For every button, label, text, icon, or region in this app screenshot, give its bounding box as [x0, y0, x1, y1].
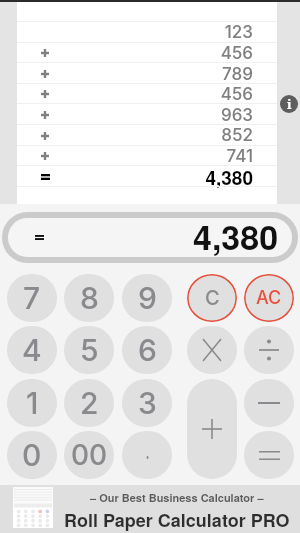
button[interactable]: All clear — [244, 274, 294, 322]
button[interactable]: 3 — [122, 379, 172, 427]
staticText: 00 — [71, 438, 108, 472]
staticText: – Our Best Business Calculator – — [90, 490, 264, 506]
button[interactable]: Decimal point — [122, 431, 172, 479]
staticText: 123 — [224, 22, 253, 43]
button[interactable]: 9 — [122, 274, 172, 322]
staticText: 1 — [26, 385, 39, 421]
button[interactable]: Plus — [187, 379, 237, 479]
staticText: 3 — [138, 385, 157, 421]
staticText: i — [287, 95, 292, 113]
button[interactable]: 2 — [64, 379, 114, 427]
button[interactable]: Equals — [244, 431, 294, 479]
button[interactable]: Minus — [244, 379, 294, 427]
button[interactable]: 4 — [7, 326, 57, 374]
staticText: 456 — [220, 84, 253, 105]
button[interactable]: 7 — [7, 274, 57, 322]
button[interactable]: Clear entry — [187, 274, 237, 322]
staticText: 4,380 — [205, 164, 253, 191]
button[interactable]: 0 — [7, 431, 57, 479]
button[interactable]: – Our Best Business Calculator – — [0, 485, 300, 533]
staticText: 456 — [220, 43, 253, 64]
staticText: 9 — [138, 280, 157, 316]
button[interactable]: 8 — [64, 274, 114, 322]
staticText: 2 — [80, 385, 99, 421]
button[interactable]: 6 — [122, 326, 172, 374]
staticText: C — [205, 286, 220, 310]
button[interactable]: 5 — [64, 326, 114, 374]
staticText: 8 — [80, 280, 99, 316]
staticText: 741 — [226, 146, 253, 167]
button[interactable]: 4,380 — [2, 212, 298, 263]
staticText: 963 — [220, 105, 253, 126]
staticText: 6 — [138, 332, 157, 368]
staticText: 5 — [80, 332, 99, 368]
button[interactable]: Multiply — [187, 326, 237, 374]
staticText: 789 — [222, 64, 253, 85]
staticText: AC — [256, 287, 282, 309]
button[interactable]: 00 — [64, 431, 114, 479]
staticText: 7 — [23, 280, 41, 316]
button[interactable]: Info — [280, 95, 298, 113]
staticText: 4,380 — [193, 212, 279, 261]
button[interactable]: 1 — [7, 379, 57, 427]
button[interactable]: Divide — [244, 326, 294, 374]
staticText: 852 — [221, 125, 253, 146]
staticText: 4 — [22, 332, 42, 368]
staticText: Roll Paper Calculator PRO — [64, 507, 290, 533]
staticText: 0 — [22, 437, 42, 473]
